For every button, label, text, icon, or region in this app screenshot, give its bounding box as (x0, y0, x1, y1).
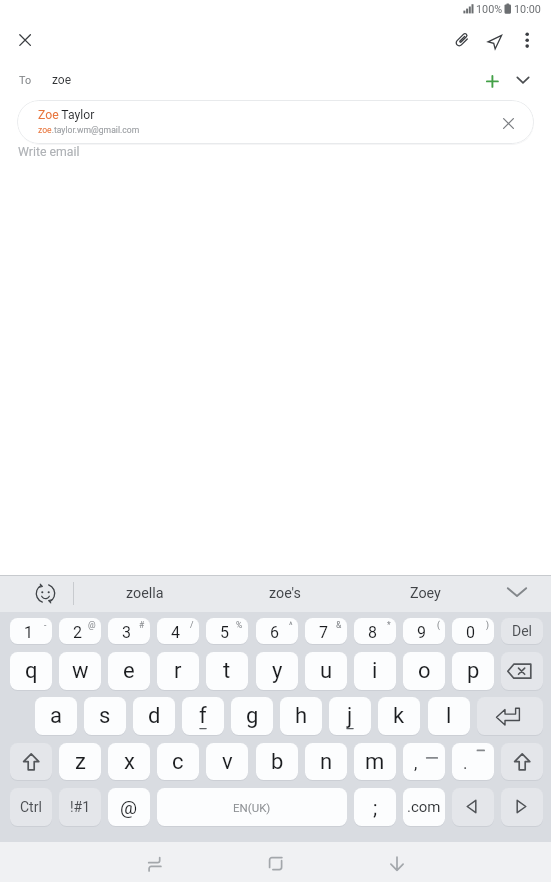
button[interactable]: @ (108, 788, 150, 826)
button[interactable]: Zoey (365, 578, 485, 609)
staticText: n (320, 749, 333, 775)
staticText: @ (120, 796, 138, 818)
button[interactable]: q (10, 652, 52, 690)
button[interactable]: x (108, 743, 150, 780)
staticText: z (75, 749, 86, 775)
button[interactable]: d (133, 697, 175, 735)
button[interactable] (10, 743, 52, 780)
button[interactable]: h (280, 697, 322, 735)
staticText: Zoe Taylor (38, 108, 95, 122)
button[interactable]: 3 (108, 618, 150, 644)
button[interactable]: k (378, 697, 420, 735)
staticText: p (467, 658, 480, 684)
button[interactable]: 9 (403, 618, 445, 644)
button[interactable]: t (206, 652, 248, 690)
button[interactable]: Zoe Taylor (17, 100, 534, 144)
button[interactable]: f (182, 697, 224, 735)
button[interactable]: 4 (157, 618, 199, 644)
button[interactable] (142, 850, 168, 876)
button[interactable]: EN(UK) (157, 788, 347, 826)
staticText: o (418, 658, 431, 684)
button[interactable]: Ctrl (10, 788, 52, 826)
button[interactable]: ; (354, 788, 396, 826)
staticText: . (463, 753, 468, 773)
staticText: % (236, 620, 243, 630)
button[interactable]: w (59, 652, 101, 690)
button[interactable]: zoe's (225, 578, 345, 609)
button[interactable] (506, 586, 528, 600)
button[interactable]: v (206, 743, 248, 780)
button[interactable]: n (305, 743, 347, 780)
button[interactable]: Del (501, 618, 543, 644)
button[interactable]: . (452, 743, 494, 780)
button[interactable]: y (256, 652, 298, 690)
button[interactable]: , (403, 743, 445, 780)
button[interactable]: o (403, 652, 445, 690)
button[interactable] (486, 75, 499, 88)
button[interactable] (451, 31, 471, 51)
button[interactable]: i (354, 652, 396, 690)
staticText: c (172, 749, 184, 775)
staticText: r (174, 658, 182, 684)
button[interactable]: l (428, 697, 470, 735)
staticText: k (393, 703, 405, 729)
button[interactable]: .com (403, 788, 445, 826)
button[interactable]: c (157, 743, 199, 780)
button[interactable] (477, 697, 543, 735)
staticText: a (50, 703, 62, 729)
staticText: f (199, 703, 207, 729)
button[interactable] (452, 788, 494, 826)
staticText: 6 (270, 623, 279, 642)
staticText: t (223, 658, 231, 684)
staticText: 5 (220, 623, 229, 642)
button[interactable]: g (231, 697, 273, 735)
staticText: b (271, 749, 284, 775)
button[interactable] (384, 850, 410, 876)
button[interactable] (502, 117, 515, 130)
button[interactable]: 5 (206, 618, 248, 644)
staticText: zoella (126, 585, 164, 602)
button[interactable]: 6 (256, 618, 298, 644)
button[interactable] (501, 788, 543, 826)
button[interactable]: 8 (354, 618, 396, 644)
button[interactable] (486, 31, 506, 51)
button[interactable]: b (256, 743, 298, 780)
button[interactable] (501, 743, 543, 780)
staticText: e (123, 658, 135, 684)
button[interactable]: r (157, 652, 199, 690)
staticText: .com (407, 798, 441, 816)
button[interactable] (34, 582, 57, 605)
staticText: 2 (73, 623, 82, 642)
staticText: 4 (171, 623, 180, 642)
staticText: ( (437, 620, 440, 630)
button[interactable] (263, 851, 289, 877)
button[interactable]: !#1 (59, 788, 101, 826)
button[interactable] (516, 75, 530, 85)
button[interactable]: m (354, 743, 396, 780)
button[interactable]: 7 (305, 618, 347, 644)
staticText: v (222, 749, 233, 775)
staticText: ) (486, 620, 489, 630)
button[interactable] (463, 4, 475, 14)
button[interactable]: z (59, 743, 101, 780)
button[interactable]: p (452, 652, 494, 690)
button[interactable]: s (84, 697, 126, 735)
button[interactable] (501, 652, 543, 690)
staticText: w (72, 658, 89, 684)
button[interactable] (522, 31, 534, 50)
staticText: , (414, 753, 418, 773)
button[interactable]: j (329, 697, 371, 735)
button[interactable]: zoella (85, 578, 205, 609)
staticText: 9 (417, 623, 426, 642)
button[interactable]: u (305, 652, 347, 690)
staticText: 100% (476, 3, 503, 16)
button[interactable]: 2 (59, 618, 101, 644)
button[interactable] (504, 3, 512, 14)
staticText: 3 (122, 623, 131, 642)
button[interactable]: 1 (10, 618, 52, 644)
button[interactable]: e (108, 652, 150, 690)
staticText: d (148, 703, 161, 729)
button[interactable]: 0 (452, 618, 494, 644)
button[interactable]: a (35, 697, 77, 735)
button[interactable] (19, 34, 31, 46)
